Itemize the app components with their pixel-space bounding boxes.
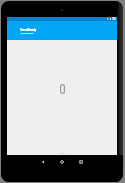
staticText: No intensity detected — [20, 31, 34, 34]
button[interactable]: Home — [57, 157, 67, 167]
button[interactable]: Recent apps — [76, 157, 86, 167]
button[interactable]: Normal Intensity — [7, 21, 117, 40]
staticText: 9:50 — [112, 17, 116, 21]
staticText: Normal Intensity — [20, 28, 36, 32]
button[interactable]: Back — [38, 157, 48, 167]
